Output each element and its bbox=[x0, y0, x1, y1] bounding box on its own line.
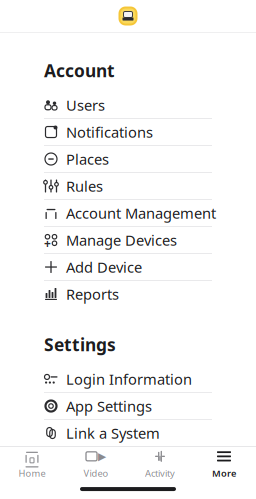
staticText: Manage Devices bbox=[66, 230, 177, 250]
button[interactable]: Notifications bbox=[0, 119, 256, 145]
staticText: Link a System bbox=[66, 423, 160, 443]
button[interactable]: Activity bbox=[128, 447, 192, 481]
staticText: Rules bbox=[66, 176, 103, 196]
button[interactable]: Home bbox=[0, 447, 64, 481]
staticText: Account bbox=[44, 59, 115, 82]
staticText: Account Management bbox=[66, 203, 216, 223]
staticText: Video bbox=[83, 467, 108, 479]
staticText: More bbox=[212, 467, 236, 479]
staticText: Activity bbox=[145, 467, 175, 479]
button[interactable]: ▶ bbox=[64, 447, 128, 481]
staticText: ▶ bbox=[98, 450, 106, 462]
staticText: Home bbox=[18, 467, 45, 479]
button[interactable]: Add Device bbox=[0, 254, 256, 280]
button[interactable]: Places bbox=[0, 146, 256, 172]
staticText: Places bbox=[66, 149, 109, 169]
button[interactable]: + bbox=[0, 227, 256, 253]
staticText: Add Device bbox=[66, 257, 142, 277]
staticText: Reports bbox=[66, 284, 119, 304]
button[interactable]: More bbox=[192, 447, 256, 481]
staticText: App Settings bbox=[66, 396, 152, 416]
button[interactable]: Rules bbox=[0, 173, 256, 199]
button[interactable]: Login Information bbox=[0, 366, 256, 392]
staticText: Settings bbox=[44, 333, 116, 356]
button[interactable]: Users bbox=[0, 92, 256, 118]
staticText: + bbox=[44, 235, 51, 251]
button[interactable]: App Settings bbox=[0, 393, 256, 419]
staticText: Login Information bbox=[66, 369, 192, 389]
staticText: Users bbox=[66, 95, 105, 115]
button[interactable]: Link a System bbox=[0, 420, 256, 446]
staticText: Notifications bbox=[66, 122, 153, 142]
button[interactable]: Reports bbox=[0, 281, 256, 307]
button[interactable]: Account Management bbox=[0, 200, 256, 226]
